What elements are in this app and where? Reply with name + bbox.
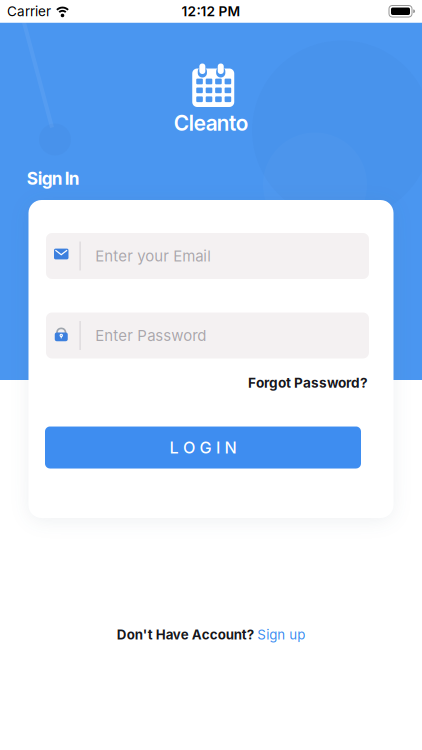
staticText: Carrier [7,3,51,19]
staticText: Don't Have Account? [117,626,254,643]
staticText: 12:12 PM [181,3,240,20]
button[interactable]: Enter Password [46,312,369,358]
staticText: LOGIN [169,438,236,457]
button[interactable]: Forgot Password? [248,374,368,391]
staticText: Sign up [257,626,305,643]
staticText: Forgot Password? [248,374,368,391]
button[interactable]: LOGIN [45,426,361,468]
staticText: Sign In [27,168,79,189]
staticText: Cleanto [174,110,248,136]
button[interactable]: Sign up [257,626,305,643]
button[interactable]: Enter your Email [46,233,369,279]
staticText: Enter your Email [95,247,211,265]
staticText: Enter Password [95,326,206,344]
